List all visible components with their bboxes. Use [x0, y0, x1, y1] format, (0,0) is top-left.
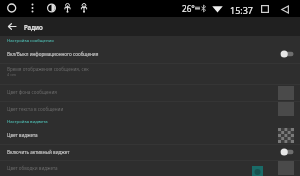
staticText: Радио	[24, 23, 43, 31]
button[interactable]: Цвет виджета	[0, 128, 300, 144]
button[interactable]: Время отображения сообщения, сек	[0, 64, 300, 84]
staticText: Вкл/Выкл информационного сообщения	[7, 51, 99, 57]
button[interactable]: Цвет	[252, 166, 263, 176]
staticText: Настройка сообщения	[7, 38, 54, 44]
staticText: Время отображения сообщения, сек	[7, 66, 89, 72]
staticText: Включить активный виджет	[7, 149, 70, 155]
staticText: 4 сек	[7, 72, 17, 77]
button[interactable]: Цвет текста в сообщении	[0, 102, 300, 117]
staticText: 26°	[182, 3, 195, 14]
staticText: Цвет обводки виджета	[7, 165, 58, 171]
button[interactable]: Выбрать цвет	[278, 128, 294, 143]
button[interactable]: Назад	[279, 3, 291, 15]
staticText: Настройка виджета	[7, 119, 48, 125]
staticText: Цвет текста в сообщении	[7, 106, 64, 112]
button[interactable]: Вкл/Выкл информационного сообщения	[0, 37, 300, 63]
staticText: Цвет фона сообщения	[7, 89, 57, 95]
button[interactable]: Включить активный виджет	[0, 145, 300, 160]
button[interactable]: Недавние приложения	[259, 3, 271, 15]
button[interactable]: Цвет фона сообщения	[0, 85, 300, 101]
staticText: 15:37	[230, 4, 254, 16]
staticText: Цвет виджета	[7, 132, 38, 138]
button[interactable]: Цвет обводки виджета	[0, 161, 300, 176]
button[interactable]: Назад	[4, 19, 19, 34]
